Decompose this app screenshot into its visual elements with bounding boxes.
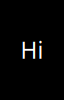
staticText: Hi (20, 35, 43, 65)
